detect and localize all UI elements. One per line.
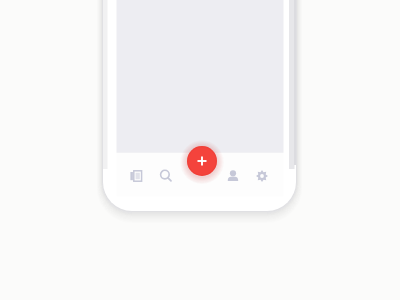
button[interactable]: Settings	[249, 163, 275, 189]
button[interactable]: Library	[123, 163, 149, 189]
button[interactable]: Add	[183, 142, 221, 180]
button[interactable]: Search	[153, 163, 179, 189]
button[interactable]: Account	[220, 163, 246, 189]
